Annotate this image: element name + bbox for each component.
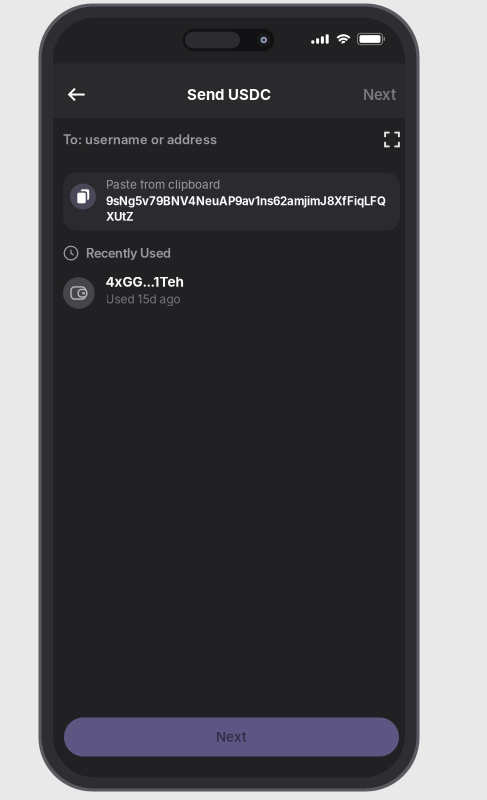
staticText: To: username or address <box>63 132 217 147</box>
staticText: XUtZ <box>106 210 134 223</box>
staticText: Paste from clipboard <box>106 177 220 192</box>
staticText: Recently Used <box>86 245 171 261</box>
staticText: Send USDC <box>187 85 271 104</box>
button[interactable]: Next <box>351 74 405 114</box>
button[interactable]: Paste from clipboard <box>63 172 400 230</box>
staticText: Next <box>363 85 396 103</box>
button[interactable]: 4xGG...1Teh <box>53 268 405 312</box>
staticText: 4xGG...1Teh <box>106 274 184 290</box>
staticText: Used 15d ago <box>106 292 181 306</box>
staticText: Next <box>216 729 247 745</box>
button[interactable]: Next <box>64 717 399 756</box>
button[interactable]: Back <box>53 76 98 112</box>
staticText: 9sNg5v79BNV4NeuAP9av1ns62amjimJ8XfFiqLFQ <box>106 194 386 208</box>
button[interactable]: Scan QR code <box>374 125 400 153</box>
